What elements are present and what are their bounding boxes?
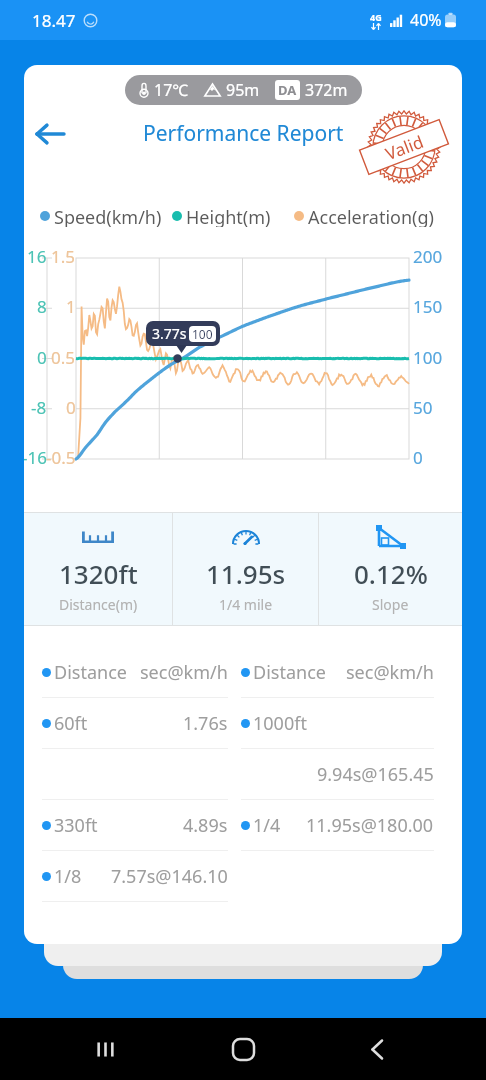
button[interactable]: 11.95s	[173, 512, 318, 626]
staticText: 150	[413, 295, 443, 318]
button[interactable]: Distance	[24, 647, 240, 698]
button[interactable]: 1000ft	[238, 698, 462, 749]
button[interactable]: 330ft	[24, 800, 240, 851]
staticText: 60ft	[54, 711, 88, 736]
staticText: 1/4 mile	[219, 595, 273, 614]
staticText: Height(m)	[186, 205, 271, 227]
button[interactable]: 9.94s@165.45	[238, 749, 462, 800]
staticText: -0.5	[46, 446, 76, 469]
staticText: 16	[27, 245, 47, 268]
staticText: -8	[31, 396, 47, 419]
staticText: Speed(km/h)	[54, 205, 162, 227]
staticText: 1.5	[51, 245, 76, 268]
staticText: -16	[24, 446, 47, 469]
staticText: 1/4	[253, 813, 281, 838]
staticText: 3.77s	[152, 324, 187, 343]
staticText: 0	[66, 396, 76, 419]
button[interactable]: 60ft	[24, 698, 240, 749]
staticText: Slope	[372, 595, 409, 614]
button[interactable]: 17℃	[139, 75, 348, 105]
staticText: 0	[37, 346, 47, 369]
button[interactable]: Recents	[83, 1018, 127, 1080]
staticText: 100	[192, 326, 213, 342]
staticText: 95m	[226, 79, 260, 101]
staticText: sec@km/h	[140, 660, 228, 685]
staticText: 330ft	[54, 813, 98, 838]
staticText: Distance	[253, 660, 326, 685]
staticText: 11.95s	[206, 556, 286, 591]
staticText: Distance	[54, 660, 127, 685]
button[interactable]: Distance	[238, 647, 462, 698]
staticText: Distance(m)	[59, 595, 138, 614]
staticText: Performance Report	[143, 119, 344, 148]
staticText: DA	[278, 81, 297, 99]
staticText: 1320ft	[59, 556, 138, 591]
staticText: 1/8	[54, 864, 82, 889]
staticText: 0.5	[51, 346, 76, 369]
staticText: 0	[413, 446, 423, 469]
staticText: 100	[413, 346, 443, 369]
staticText: 200	[413, 245, 443, 268]
staticText: Acceleration(g)	[308, 205, 434, 227]
staticText: 1000ft	[253, 711, 307, 736]
staticText: 50	[413, 396, 433, 419]
staticText: Valid	[382, 130, 427, 165]
button[interactable]: 1320ft	[24, 512, 172, 626]
button[interactable]: 1/8	[24, 851, 240, 902]
staticText: 17℃	[154, 79, 189, 101]
staticText: 0.12%	[354, 556, 428, 591]
button[interactable]: Home	[221, 1018, 265, 1080]
button[interactable]: 1/4	[238, 800, 462, 851]
staticText: 11.95s@180.00	[306, 813, 434, 838]
staticText: 18.47	[32, 9, 76, 32]
button[interactable]: Back	[28, 112, 72, 156]
button[interactable]: Back	[355, 1018, 399, 1080]
staticText: sec@km/h	[346, 660, 434, 685]
button[interactable]: 0.12%	[319, 512, 462, 626]
staticText: 1.76s	[183, 711, 228, 736]
staticText: 40%	[410, 9, 442, 31]
staticText: 1	[66, 295, 76, 318]
staticText: 7.57s@146.10	[111, 864, 228, 889]
staticText: 372m	[305, 79, 348, 101]
staticText: 4G	[370, 11, 382, 23]
staticText: 8	[37, 295, 47, 318]
staticText: 9.94s@165.45	[317, 762, 434, 787]
staticText: 4.89s	[183, 813, 228, 838]
